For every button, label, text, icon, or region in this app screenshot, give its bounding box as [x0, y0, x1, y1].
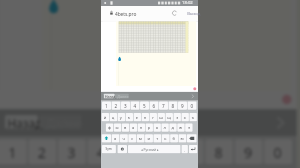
button[interactable]: Video player frame	[0, 0, 300, 168]
